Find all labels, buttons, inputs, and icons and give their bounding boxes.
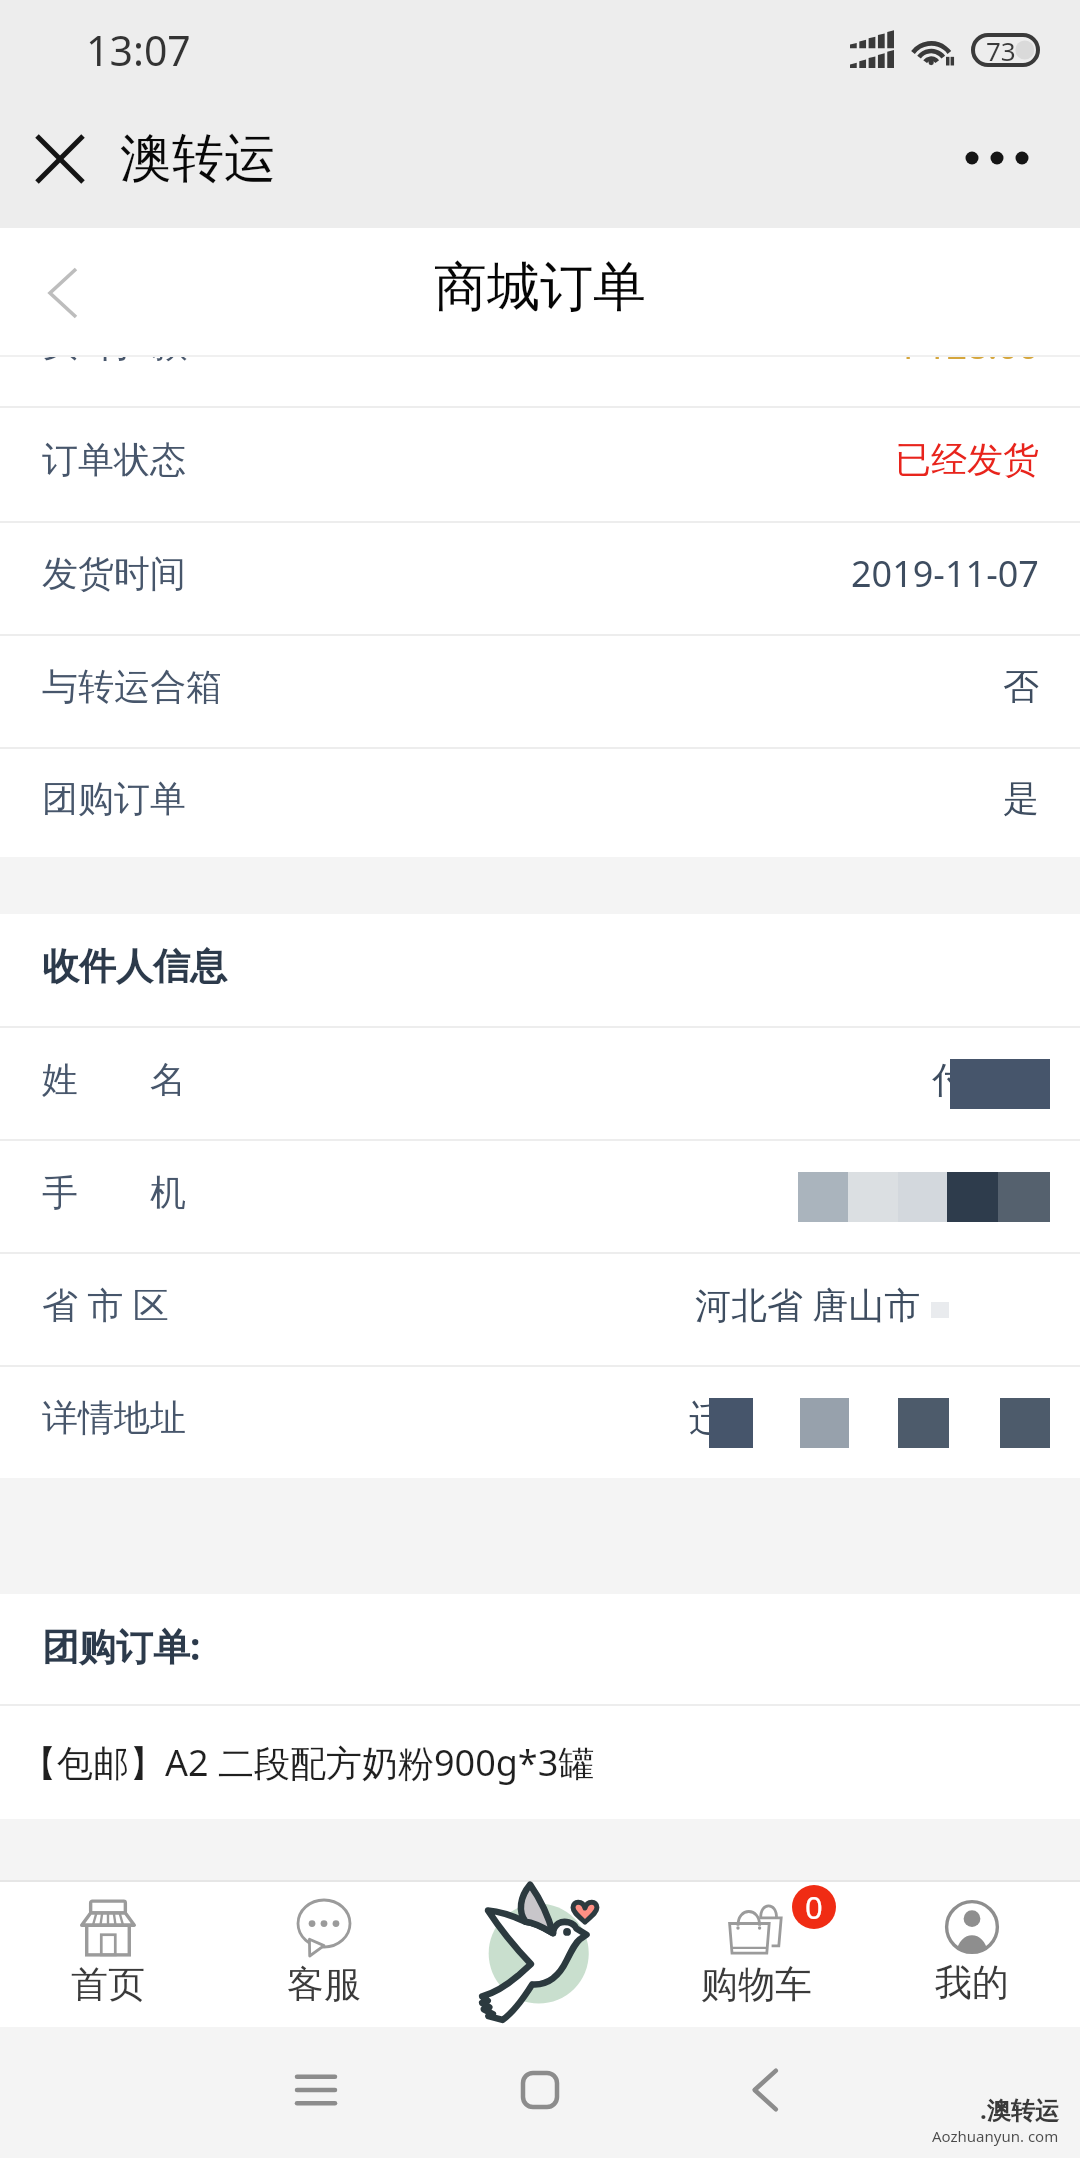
- staticText: 澳转运: [120, 126, 276, 192]
- staticText: 购物车: [701, 1961, 812, 2008]
- staticText: 订单状态: [42, 437, 186, 482]
- button[interactable]: 【包邮】A2 二段配方奶粉900g*3罐: [0, 1706, 1080, 1819]
- button[interactable]: 详情地址: [0, 1367, 1080, 1478]
- staticText: 姓 名: [42, 1054, 186, 1103]
- button[interactable]: Close: [14, 113, 106, 205]
- button[interactable]: Back: [16, 246, 110, 340]
- staticText: 否: [1003, 664, 1039, 709]
- button[interactable]: 订单状态: [0, 408, 1080, 521]
- staticText: 详情地址: [42, 1395, 186, 1440]
- staticText: 收件人信息: [42, 943, 227, 990]
- button[interactable]: Back: [720, 2045, 810, 2135]
- staticText: 省 市 区: [42, 1280, 169, 1329]
- button[interactable]: Home dove: [432, 1880, 648, 2027]
- staticText: 是: [1003, 776, 1039, 821]
- button[interactable]: Home: [495, 2045, 585, 2135]
- button[interactable]: 省 市 区: [0, 1254, 1080, 1365]
- button[interactable]: 首页: [0, 1880, 216, 2027]
- staticText: 首页: [71, 1961, 145, 2008]
- staticText: 与转运合箱: [42, 664, 222, 709]
- button[interactable]: 发货时间: [0, 523, 1080, 634]
- staticText: ￥128.00: [890, 357, 1039, 370]
- button[interactable]: 姓 名: [0, 1028, 1080, 1139]
- button[interactable]: Recent apps: [271, 2045, 361, 2135]
- staticText: 我的: [935, 1959, 1009, 2006]
- staticText: 团购订单: [42, 776, 186, 821]
- staticText: .澳转运: [980, 2093, 1059, 2126]
- button[interactable]: 团购订单: [0, 749, 1080, 857]
- staticText: 手 机: [42, 1167, 186, 1216]
- staticText: 客服: [287, 1961, 361, 2008]
- staticText: 付: [932, 1057, 968, 1102]
- button[interactable]: 实 付 款: [0, 357, 1080, 406]
- staticText: 0: [805, 1886, 823, 1928]
- button[interactable]: 与转运合箱: [0, 636, 1080, 747]
- button[interactable]: 0: [648, 1880, 864, 2027]
- staticText: 实 付 款: [42, 357, 188, 367]
- staticText: 发货时间: [42, 551, 186, 596]
- staticText: 迁: [689, 1396, 725, 1441]
- staticText: 团购订单:: [42, 1620, 201, 1671]
- staticText: 73: [986, 33, 1016, 67]
- staticText: 河北省 唐山市: [695, 1280, 921, 1329]
- button[interactable]: 手 机: [0, 1141, 1080, 1252]
- button[interactable]: More options: [952, 113, 1042, 203]
- staticText: 2019-11-07: [851, 549, 1039, 598]
- staticText: 【包邮】A2 二段配方奶粉900g*3罐: [21, 1738, 595, 1787]
- staticText: Aozhuanyun. com: [932, 2126, 1059, 2146]
- staticText: 已经发货: [895, 437, 1039, 482]
- button[interactable]: 客服: [216, 1880, 432, 2027]
- button[interactable]: 我的: [864, 1880, 1080, 2027]
- staticText: 商城订单: [434, 254, 646, 321]
- staticText: 13:07: [86, 22, 191, 78]
